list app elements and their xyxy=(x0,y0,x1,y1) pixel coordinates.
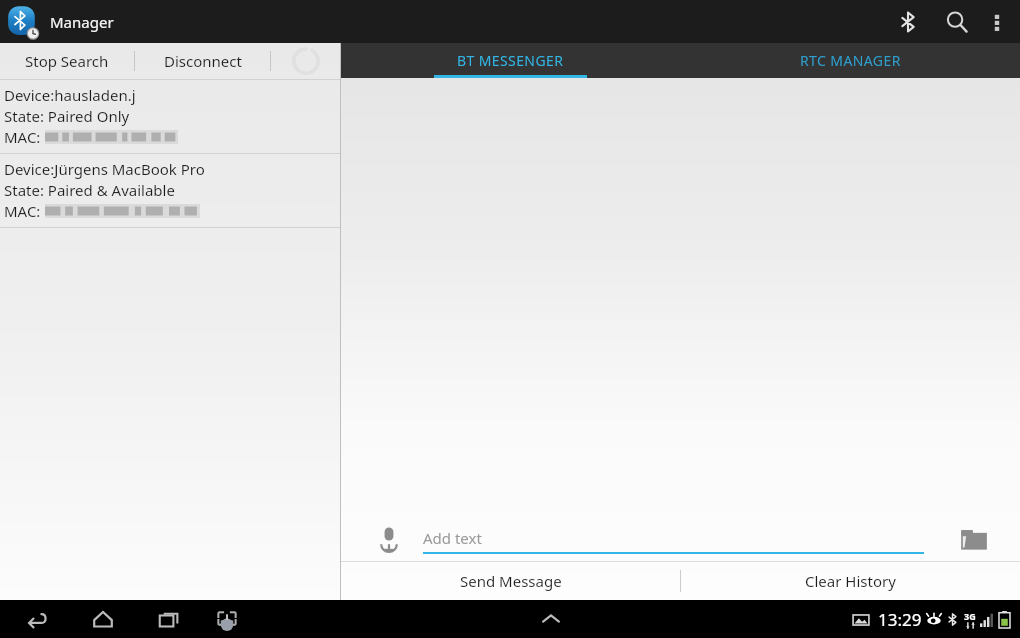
button[interactable]: Back xyxy=(14,600,60,638)
button[interactable]: Stop Search xyxy=(0,43,134,79)
button[interactable]: Device:hausladen.j xyxy=(0,80,340,153)
staticText: State: Paired & Available xyxy=(4,180,175,200)
button[interactable]: Bluetooth xyxy=(884,0,932,43)
button[interactable]: Add text xyxy=(423,524,924,552)
button[interactable]: Expand xyxy=(528,600,574,638)
button[interactable]: Home xyxy=(80,600,126,638)
button[interactable]: Screenshot xyxy=(204,600,250,638)
button[interactable]: Open file xyxy=(952,517,996,561)
staticText: Send Message xyxy=(460,571,562,591)
button[interactable]: Device:Jürgens MacBook Pro xyxy=(0,154,340,227)
staticText: Manager xyxy=(50,12,114,32)
staticText: BT MESSENGER xyxy=(457,51,564,70)
button[interactable]: Disconnect xyxy=(135,43,270,79)
staticText: MAC: xyxy=(4,127,45,147)
button[interactable]: Voice input xyxy=(369,519,409,559)
button[interactable]: BT MESSENGER xyxy=(341,43,680,78)
button[interactable]: Clear History xyxy=(681,562,1020,600)
staticText: MAC: xyxy=(4,201,45,221)
staticText: Clear History xyxy=(805,571,896,591)
staticText: State: Paired Only xyxy=(4,106,130,126)
button[interactable]: Recent apps xyxy=(146,600,192,638)
staticText: Device:hausladen.j xyxy=(4,85,136,105)
staticText: Stop Search xyxy=(25,51,109,71)
staticText: Add text xyxy=(423,528,482,548)
staticText: 3G xyxy=(964,610,976,622)
staticText: 13:29 xyxy=(878,608,922,631)
button[interactable]: More options xyxy=(982,0,1012,43)
staticText: Device:Jürgens MacBook Pro xyxy=(4,159,205,179)
button[interactable]: Search xyxy=(932,0,982,43)
button[interactable]: RTC MANAGER xyxy=(680,43,1020,78)
button[interactable]: Send Message xyxy=(341,562,680,600)
staticText: RTC MANAGER xyxy=(800,51,901,70)
staticText: Disconnect xyxy=(164,51,242,71)
